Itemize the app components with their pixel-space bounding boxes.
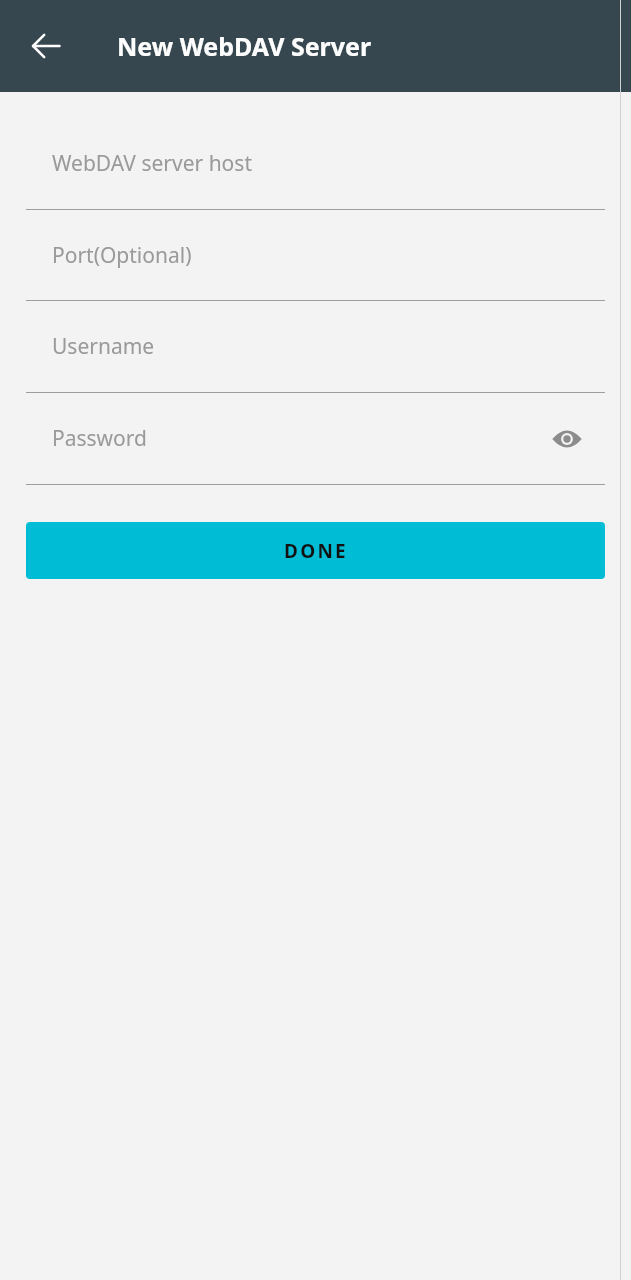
button[interactable]: Username <box>26 301 605 392</box>
button[interactable]: Back <box>10 10 82 82</box>
staticText: DONE <box>284 538 348 564</box>
button[interactable]: WebDAV server host <box>26 118 605 209</box>
button[interactable]: Password <box>26 393 605 484</box>
button[interactable]: Show password <box>543 415 591 463</box>
staticText: New WebDAV Server <box>117 29 372 63</box>
button[interactable]: DONE <box>26 522 605 579</box>
staticText: WebDAV server host <box>52 149 605 178</box>
staticText: Username <box>52 332 605 361</box>
button[interactable]: Port(Optional) <box>26 210 605 300</box>
staticText: Port(Optional) <box>52 241 605 270</box>
staticText: Password <box>52 424 543 453</box>
